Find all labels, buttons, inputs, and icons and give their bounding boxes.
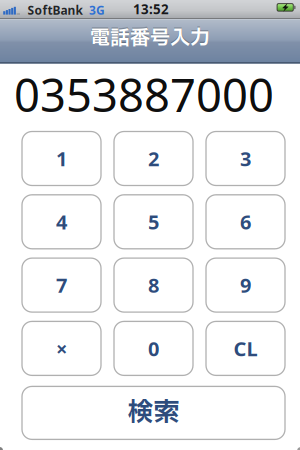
staticText: 4 bbox=[56, 208, 67, 235]
button[interactable]: 0 bbox=[114, 321, 193, 375]
button[interactable]: 4 bbox=[22, 195, 101, 249]
staticText: 電話番号入力 bbox=[90, 23, 210, 53]
staticText: 1 bbox=[56, 145, 67, 172]
staticText: 2 bbox=[148, 145, 159, 172]
button[interactable]: 7 bbox=[22, 258, 101, 312]
staticText: 0353887000 bbox=[14, 64, 274, 125]
staticText: 9 bbox=[240, 272, 251, 298]
staticText: 検索 bbox=[127, 393, 179, 432]
staticText: 6 bbox=[240, 208, 251, 235]
button[interactable]: CL bbox=[206, 321, 285, 375]
button[interactable]: 8 bbox=[114, 258, 193, 312]
button[interactable]: 検索 bbox=[22, 386, 285, 439]
staticText: 3 bbox=[240, 145, 251, 172]
staticText: 7 bbox=[56, 272, 67, 298]
button[interactable]: 1 bbox=[22, 131, 101, 185]
button[interactable]: × bbox=[22, 321, 101, 375]
staticText: 8 bbox=[148, 272, 159, 298]
button[interactable]: 6 bbox=[206, 195, 285, 249]
button[interactable]: 9 bbox=[206, 258, 285, 312]
staticText: 0 bbox=[148, 335, 159, 362]
staticText: 5 bbox=[148, 208, 159, 235]
staticText: SoftBank bbox=[27, 2, 82, 18]
staticText: 13:52 bbox=[133, 0, 169, 18]
staticText: 3G bbox=[89, 2, 105, 18]
button[interactable]: 5 bbox=[114, 195, 193, 249]
staticText: CL bbox=[233, 335, 257, 362]
button[interactable]: 2 bbox=[114, 131, 193, 185]
staticText: × bbox=[56, 335, 67, 362]
button[interactable]: 3 bbox=[206, 131, 285, 185]
